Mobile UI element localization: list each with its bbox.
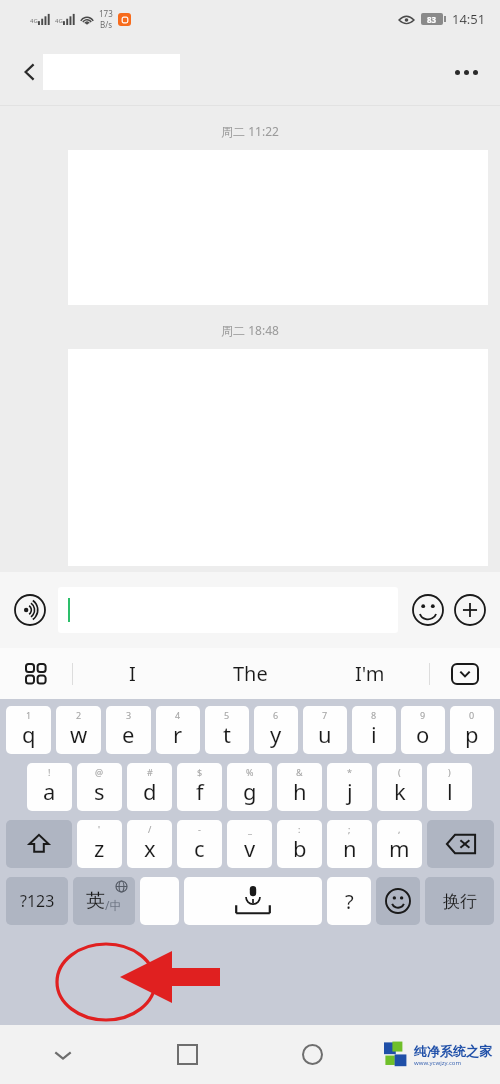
button[interactable]: 1 <box>6 706 51 754</box>
button[interactable]: 4 <box>156 706 200 754</box>
button[interactable]: 0 <box>450 706 494 754</box>
button[interactable]: ) <box>427 763 472 811</box>
staticText: n <box>343 833 357 863</box>
button[interactable]: 7 <box>303 706 347 754</box>
button[interactable] <box>140 877 179 925</box>
button[interactable]: I'm <box>310 648 429 699</box>
staticText: y <box>270 719 282 749</box>
button[interactable] <box>58 587 398 633</box>
button[interactable]: Switch language <box>73 877 135 925</box>
button[interactable]: & <box>277 763 322 811</box>
button[interactable]: ' <box>77 820 122 868</box>
button[interactable]: The <box>191 648 310 699</box>
button[interactable]: * <box>327 763 372 811</box>
staticText: 173 <box>99 8 113 19</box>
other: Space <box>184 877 322 925</box>
staticText: 7 <box>322 709 328 721</box>
button[interactable]: ( <box>377 763 422 811</box>
staticText: o <box>416 719 430 749</box>
staticText: 1 <box>26 709 32 721</box>
staticText: v <box>244 833 256 863</box>
button[interactable]: _ <box>227 820 272 868</box>
staticText: d <box>143 776 157 806</box>
other: Switch language <box>73 877 135 925</box>
staticText: x <box>144 833 156 863</box>
staticText: ? <box>345 888 354 915</box>
button[interactable]: 5 <box>205 706 249 754</box>
button[interactable]: Home <box>250 1025 375 1084</box>
button[interactable]: Shift <box>6 820 72 868</box>
staticText: 4G <box>55 17 63 25</box>
button[interactable]: Emoji <box>376 877 420 925</box>
staticText: 3 <box>126 709 132 721</box>
button[interactable]: I <box>73 648 191 699</box>
staticText: $ <box>197 766 203 778</box>
staticText: 14:51 <box>452 10 486 28</box>
button[interactable]: Voice input <box>12 592 48 628</box>
button[interactable]: Back <box>0 1025 125 1084</box>
button[interactable]: Keyboard menu <box>0 648 72 699</box>
button[interactable]: ? <box>327 877 371 925</box>
button[interactable]: , <box>377 820 422 868</box>
button[interactable]: ?123 <box>6 877 68 925</box>
staticText: _ <box>248 823 252 835</box>
staticText: e <box>122 719 135 749</box>
button[interactable]: Emoji <box>410 592 446 628</box>
staticText: h <box>293 776 307 806</box>
staticText: * <box>347 766 352 778</box>
staticText: f <box>196 776 204 806</box>
button[interactable]: # <box>127 763 172 811</box>
staticText: ) <box>448 766 451 778</box>
button[interactable]: 换行 <box>425 877 494 925</box>
staticText: c <box>194 833 205 863</box>
button[interactable]: % <box>227 763 272 811</box>
button[interactable]: Recent apps <box>125 1025 250 1084</box>
button[interactable]: $ <box>177 763 222 811</box>
staticText: 6 <box>273 709 279 721</box>
button[interactable]: @ <box>77 763 122 811</box>
button[interactable]: 2 <box>56 706 101 754</box>
staticText: 周二 11:22 <box>0 123 500 139</box>
button[interactable]: More functions <box>452 592 488 628</box>
staticText: / <box>148 823 152 835</box>
button[interactable]: 6 <box>254 706 298 754</box>
button[interactable]: Backspace <box>427 820 494 868</box>
staticText: - <box>198 823 201 835</box>
button[interactable]: : <box>277 820 322 868</box>
staticText: 9 <box>420 709 426 721</box>
button[interactable]: 8 <box>352 706 396 754</box>
staticText: l <box>447 776 453 806</box>
staticText: s <box>94 776 105 806</box>
staticText: j <box>347 776 353 806</box>
button[interactable]: ; <box>327 820 372 868</box>
staticText: 4G <box>30 17 38 25</box>
staticText: w <box>70 719 88 749</box>
button[interactable]: Back <box>8 50 52 94</box>
staticText: p <box>465 719 479 749</box>
staticText: % <box>246 766 254 778</box>
button[interactable]: Space <box>184 877 322 925</box>
button[interactable]: 3 <box>106 706 151 754</box>
staticText: # <box>147 766 153 778</box>
staticText: 周二 18:48 <box>0 322 500 338</box>
button[interactable]: / <box>127 820 172 868</box>
staticText: g <box>243 776 257 806</box>
button[interactable]: 9 <box>401 706 445 754</box>
staticText: /中 <box>105 897 122 913</box>
other: Emoji <box>385 888 411 914</box>
staticText: I'm <box>355 660 385 687</box>
button[interactable]: - <box>177 820 222 868</box>
staticText: m <box>389 833 410 863</box>
button[interactable]: More options <box>444 50 488 94</box>
staticText: t <box>223 719 231 749</box>
staticText: a <box>43 776 56 806</box>
staticText: ; <box>348 823 351 835</box>
button[interactable]: ! <box>27 763 72 811</box>
staticText: k <box>394 776 406 806</box>
staticText: z <box>94 833 105 863</box>
staticText: ?123 <box>20 890 55 912</box>
button[interactable]: Hide keyboard <box>430 648 500 699</box>
